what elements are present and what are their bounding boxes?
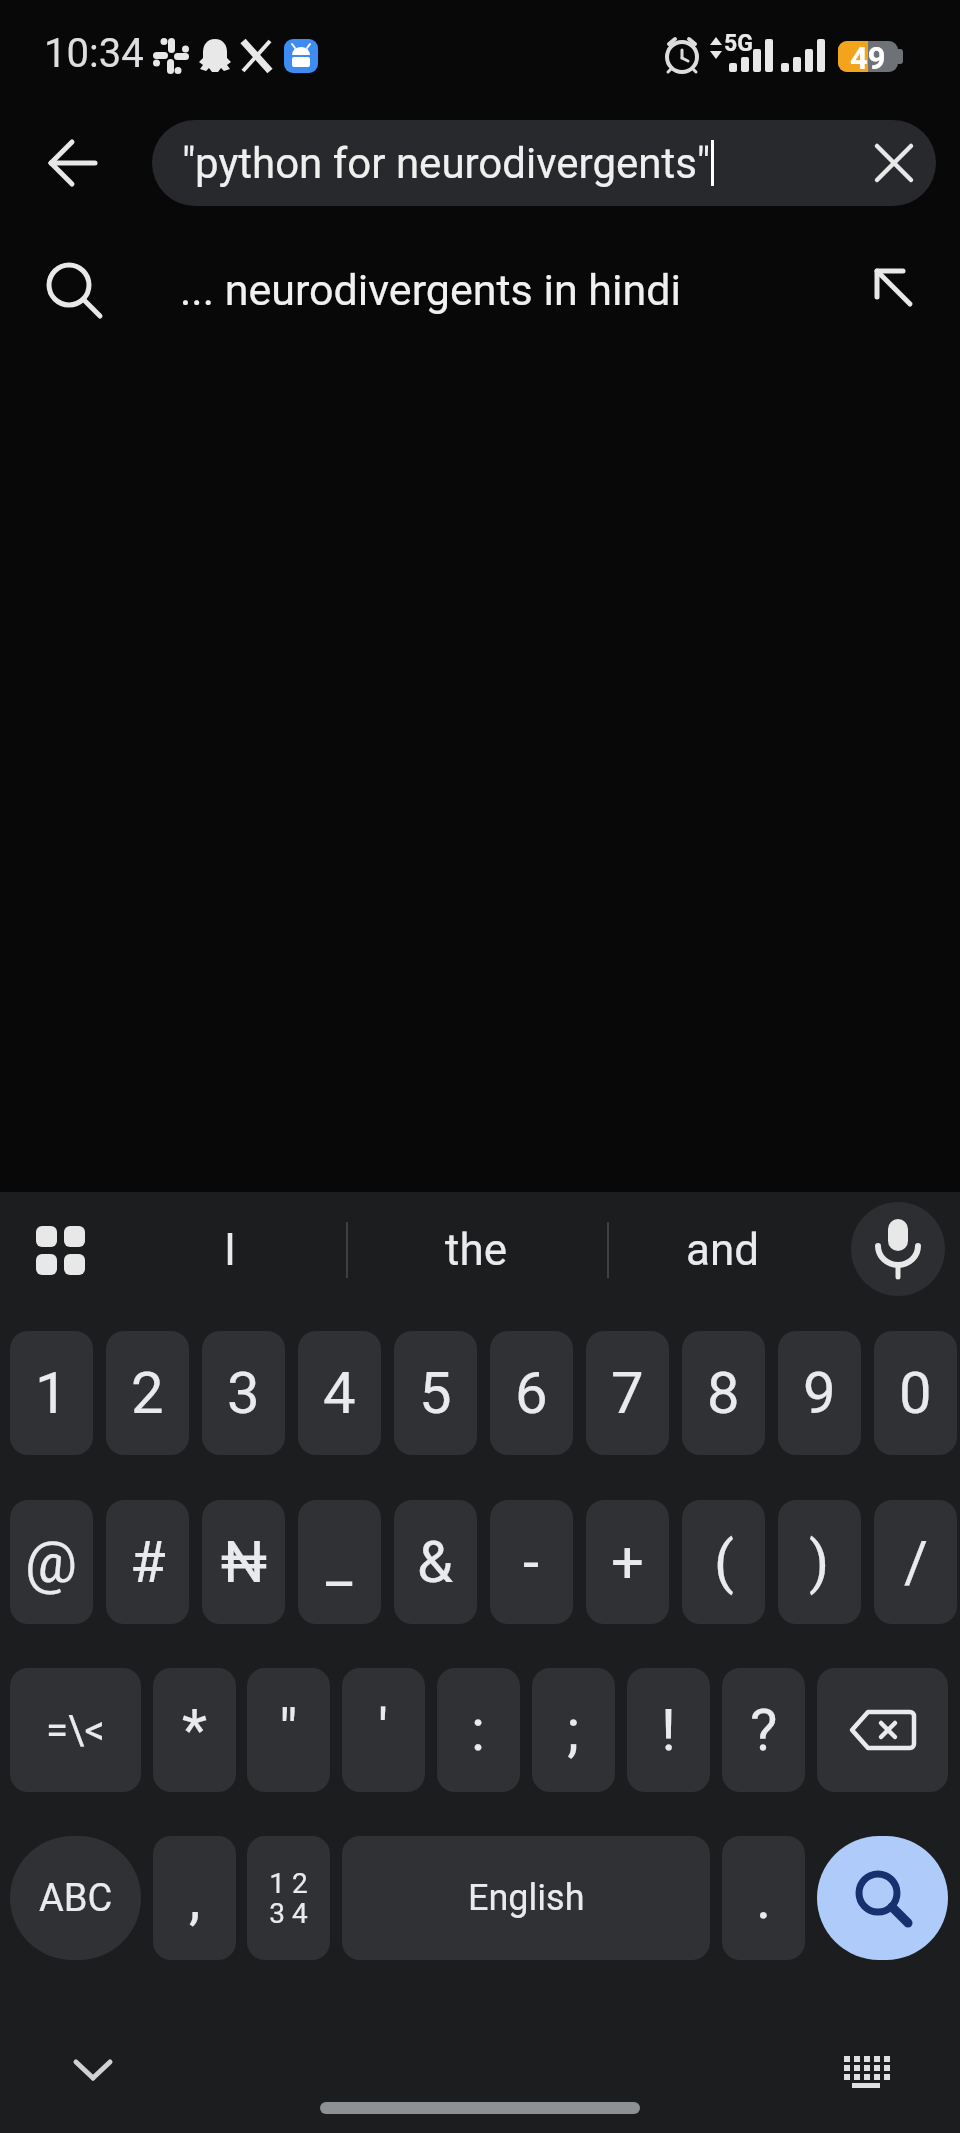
button[interactable]: @ <box>10 1500 93 1624</box>
staticText: 1 2 3 4 <box>269 1867 308 1930</box>
button[interactable]: 6 <box>490 1331 573 1455</box>
staticText: 7 <box>611 1359 644 1427</box>
button[interactable]: , <box>153 1836 236 1960</box>
button[interactable]: ABC <box>10 1836 141 1960</box>
staticText: ; <box>567 1696 580 1764</box>
button[interactable] <box>830 2040 902 2104</box>
button[interactable]: 4 <box>298 1331 381 1455</box>
button[interactable]: English <box>342 1836 710 1960</box>
staticText: ' <box>378 1696 389 1764</box>
button[interactable]: "python for neurodivergents" <box>152 120 936 206</box>
staticText: ? <box>750 1696 778 1764</box>
staticText: _ <box>326 1528 353 1596</box>
button[interactable]: 7 <box>586 1331 669 1455</box>
staticText: : <box>471 1696 486 1764</box>
staticText: the <box>445 1224 507 1276</box>
button[interactable]: 9 <box>778 1331 861 1455</box>
button[interactable]: - <box>490 1500 573 1624</box>
button[interactable]: : <box>437 1668 520 1792</box>
button[interactable]: + <box>586 1500 669 1624</box>
button[interactable]: 2 <box>106 1331 189 1455</box>
button[interactable]: the <box>386 1210 566 1290</box>
button[interactable]: and <box>633 1210 813 1290</box>
staticText: 4 <box>323 1359 356 1427</box>
staticText: 49 <box>850 40 886 72</box>
button[interactable]: ! <box>627 1668 710 1792</box>
staticText: + <box>611 1528 644 1596</box>
staticText: ABC <box>39 1876 113 1921</box>
button[interactable]: & <box>394 1500 477 1624</box>
button[interactable]: 0 <box>874 1331 957 1455</box>
button[interactable] <box>817 1668 948 1792</box>
staticText: 1 <box>35 1359 68 1427</box>
staticText: and <box>686 1224 760 1276</box>
staticText: # <box>130 1528 166 1596</box>
staticText: 8 <box>707 1359 740 1427</box>
staticText: " <box>279 1696 298 1764</box>
button[interactable]: ' <box>342 1668 425 1792</box>
button[interactable]: ? <box>722 1668 805 1792</box>
staticText: 2 <box>131 1359 164 1427</box>
button[interactable]: ... neurodivergents in hindi <box>0 240 960 340</box>
button[interactable]: " <box>247 1668 330 1792</box>
button[interactable]: 3 <box>202 1331 285 1455</box>
staticText: / <box>904 1528 928 1596</box>
button[interactable] <box>28 118 118 208</box>
staticText: 9 <box>803 1359 836 1427</box>
button[interactable] <box>851 1202 945 1296</box>
button[interactable] <box>36 1226 86 1276</box>
button[interactable]: ₦ <box>202 1500 285 1624</box>
staticText: "python for neurodivergents" <box>182 139 711 188</box>
button[interactable] <box>817 1836 948 1960</box>
staticText: 10:34 <box>44 30 144 76</box>
button[interactable]: 1 2 3 4 <box>247 1836 330 1960</box>
staticText: & <box>417 1528 454 1596</box>
staticText: * <box>182 1696 207 1764</box>
staticText: , <box>189 1864 201 1932</box>
button[interactable]: =\< <box>10 1668 141 1792</box>
button[interactable]: # <box>106 1500 189 1624</box>
staticText: . <box>756 1864 772 1932</box>
staticText: ) <box>809 1528 830 1596</box>
staticText: 5G <box>724 30 753 56</box>
staticText: ! <box>661 1696 676 1764</box>
staticText: - <box>523 1528 540 1596</box>
button[interactable]: 5 <box>394 1331 477 1455</box>
button[interactable]: ( <box>682 1500 765 1624</box>
staticText: ( <box>714 1528 734 1596</box>
button[interactable]: I <box>160 1210 300 1290</box>
staticText: ... neurodivergents in hindi <box>180 265 681 315</box>
button[interactable]: ; <box>532 1668 615 1792</box>
staticText: 5 <box>419 1359 452 1427</box>
staticText: ₦ <box>221 1528 267 1596</box>
button[interactable]: / <box>874 1500 957 1624</box>
staticText: @ <box>25 1528 78 1596</box>
button[interactable]: 8 <box>682 1331 765 1455</box>
button[interactable]: _ <box>298 1500 381 1624</box>
button[interactable]: 1 <box>10 1331 93 1455</box>
staticText: I <box>224 1224 236 1276</box>
staticText: =\< <box>46 1707 105 1754</box>
staticText: English <box>468 1877 585 1919</box>
button[interactable]: ) <box>778 1500 861 1624</box>
staticText: 0 <box>899 1359 932 1427</box>
button[interactable] <box>55 2035 131 2105</box>
button[interactable] <box>852 120 936 206</box>
button[interactable]: . <box>722 1836 805 1960</box>
staticText: 3 <box>227 1359 260 1427</box>
staticText: 6 <box>515 1359 548 1427</box>
button[interactable]: * <box>153 1668 236 1792</box>
